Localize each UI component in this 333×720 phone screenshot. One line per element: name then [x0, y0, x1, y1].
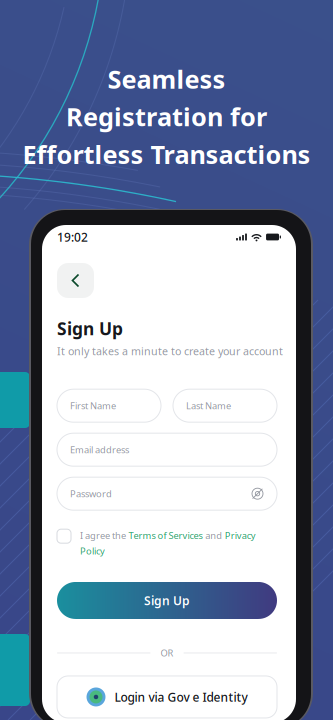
button[interactable]: Agree to the terms of service: [57, 529, 71, 543]
staticText: I agree the: [80, 529, 126, 542]
button[interactable]: Login via Gov e Identity: [57, 676, 277, 718]
staticText: 19:02: [57, 229, 88, 245]
staticText: Policy: [80, 545, 105, 557]
staticText: Last Name: [186, 399, 231, 412]
staticText: Sign Up: [57, 317, 123, 340]
staticText: It only takes a minute to create your ac…: [57, 344, 283, 358]
button[interactable]: Back: [57, 263, 94, 298]
staticText: Privacy: [225, 529, 256, 542]
staticText: Email address: [70, 443, 129, 456]
button[interactable]: Password: [57, 477, 277, 510]
staticText: First Name: [70, 399, 116, 412]
staticText: Sign Up: [144, 592, 190, 608]
button[interactable]: Last Name: [173, 389, 277, 422]
staticText: Terms of Services: [129, 529, 203, 542]
staticText: and: [205, 529, 222, 542]
staticText: Password: [70, 487, 112, 500]
button[interactable]: Email address: [57, 433, 277, 466]
staticText: Registration for: [66, 100, 267, 133]
staticText: Login via Gov e Identity: [114, 689, 247, 705]
staticText: Effortless Transactions: [22, 137, 310, 171]
button[interactable]: First Name: [57, 389, 161, 422]
staticText: Seamless: [107, 62, 225, 96]
button[interactable]: Sign Up: [57, 582, 277, 619]
staticText: OR: [160, 647, 173, 659]
